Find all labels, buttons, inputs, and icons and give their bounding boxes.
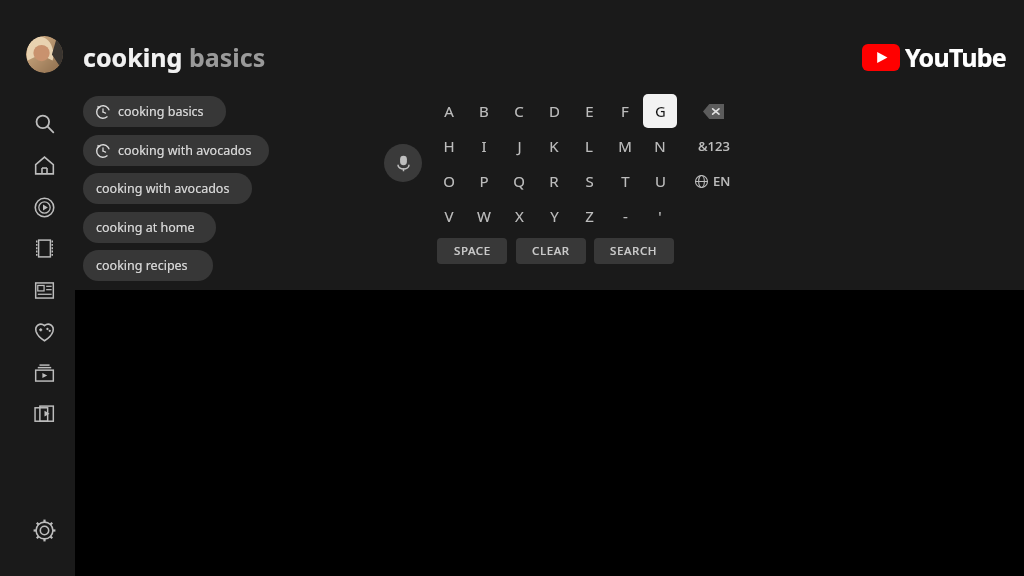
staticText: S <box>585 171 594 191</box>
button[interactable]: CLEAR <box>516 238 586 264</box>
button[interactable]: X <box>502 199 536 233</box>
button[interactable]: N <box>643 129 677 163</box>
staticText: T <box>621 171 630 191</box>
button[interactable]: I <box>467 129 501 163</box>
staticText: ' <box>658 206 662 226</box>
staticText: CLEAR <box>532 243 570 259</box>
button[interactable]: Navigation item <box>30 359 58 387</box>
button[interactable]: R <box>537 164 571 198</box>
staticText: cooking with avocados <box>118 142 252 159</box>
staticText: YouTube <box>905 40 1006 74</box>
button[interactable]: Navigation item <box>30 400 58 428</box>
staticText: V <box>444 206 454 226</box>
button[interactable]: Navigation item <box>30 276 58 304</box>
staticText: W <box>477 206 491 226</box>
staticText: SPACE <box>454 243 491 259</box>
staticText: Q <box>513 171 525 191</box>
staticText: F <box>621 101 629 121</box>
button[interactable]: cooking at home <box>83 212 216 243</box>
staticText: G <box>655 101 666 121</box>
button[interactable]: S <box>572 164 606 198</box>
button[interactable]: &123 <box>691 129 737 163</box>
staticText: C <box>514 101 524 121</box>
staticText: H <box>443 136 455 156</box>
button[interactable]: Navigation item <box>30 234 58 262</box>
staticText: Z <box>585 206 594 226</box>
staticText: J <box>517 136 522 156</box>
button[interactable]: P <box>467 164 501 198</box>
button[interactable]: cooking with avocados <box>83 173 252 204</box>
staticText: X <box>515 206 524 226</box>
button[interactable]: V <box>432 199 466 233</box>
button[interactable]: SPACE <box>437 238 507 264</box>
staticText: A <box>444 101 454 121</box>
button[interactable]: Navigation item <box>30 109 58 137</box>
button[interactable]: YouTube <box>862 40 1006 74</box>
button[interactable]: EN <box>693 164 733 198</box>
staticText: Y <box>550 206 559 226</box>
button[interactable]: Navigation item <box>30 317 58 345</box>
button[interactable]: E <box>572 94 606 128</box>
staticText: E <box>585 101 594 121</box>
staticText: cooking recipes <box>96 257 188 274</box>
staticText: basics <box>189 40 266 74</box>
staticText: I <box>481 136 487 156</box>
button[interactable]: K <box>537 129 571 163</box>
button[interactable]: W <box>467 199 501 233</box>
staticText: SEARCH <box>610 243 658 259</box>
staticText: &123 <box>698 137 730 155</box>
button[interactable]: B <box>467 94 501 128</box>
button[interactable]: Q <box>502 164 536 198</box>
button[interactable]: U <box>643 164 677 198</box>
button[interactable]: O <box>432 164 466 198</box>
staticText: L <box>585 136 593 156</box>
staticText: P <box>479 171 489 191</box>
button[interactable]: A <box>432 94 466 128</box>
staticText: R <box>549 171 559 191</box>
button[interactable]: cooking basics <box>83 96 226 127</box>
button[interactable]: Account <box>26 36 63 73</box>
staticText: cooking at home <box>96 219 195 236</box>
button[interactable]: ' <box>643 199 677 233</box>
button[interactable]: Y <box>537 199 571 233</box>
button[interactable]: J <box>502 129 536 163</box>
button[interactable]: G <box>643 94 677 128</box>
staticText: U <box>655 171 666 191</box>
button[interactable]: Navigation item <box>30 151 58 179</box>
button[interactable]: D <box>537 94 571 128</box>
button[interactable]: Navigation item <box>30 516 58 544</box>
staticText: B <box>479 101 489 121</box>
button[interactable]: Backspace <box>696 94 730 128</box>
button[interactable]: T <box>608 164 642 198</box>
button[interactable]: SEARCH <box>594 238 674 264</box>
staticText: N <box>654 136 666 156</box>
staticText: D <box>549 101 560 121</box>
button[interactable]: L <box>572 129 606 163</box>
button[interactable]: F <box>608 94 642 128</box>
staticText: cooking with avocados <box>96 180 230 197</box>
button[interactable]: cooking recipes <box>83 250 213 281</box>
staticText: cooking basics <box>118 103 204 120</box>
button[interactable]: M <box>608 129 642 163</box>
button[interactable]: - <box>608 199 642 233</box>
button[interactable]: cooking with avocados <box>83 135 269 166</box>
button[interactable]: Voice search <box>384 144 422 182</box>
staticText: O <box>443 171 455 191</box>
staticText: K <box>549 136 559 156</box>
button[interactable]: H <box>432 129 466 163</box>
button[interactable]: C <box>502 94 536 128</box>
staticText: - <box>623 206 628 226</box>
button[interactable]: Navigation item <box>30 193 58 221</box>
staticText: cooking <box>83 40 189 74</box>
button[interactable]: Z <box>572 199 606 233</box>
staticText: EN <box>713 172 731 190</box>
staticText: M <box>618 136 632 156</box>
